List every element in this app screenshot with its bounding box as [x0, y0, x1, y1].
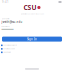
button[interactable]: Create account [1, 47, 64, 51]
staticText: Forgot password? [3, 44, 17, 46]
staticText: Sign In [27, 37, 37, 41]
button[interactable]: Forgot password? [1, 44, 64, 47]
staticText: CSU [23, 3, 36, 12]
staticText: 9:41 [2, 0, 9, 4]
staticText: Sign in with your university account [20, 13, 43, 15]
staticText: Need help? [3, 51, 11, 53]
staticText: •••••••••••• [1, 28, 13, 32]
staticText: Create account [3, 48, 14, 50]
staticText: Password [1, 26, 9, 27]
button[interactable]: Need help? [1, 51, 64, 54]
staticText: Username [1, 18, 9, 20]
staticText: jsmith@csu.edu [1, 20, 22, 24]
button[interactable]: Sign In [2, 37, 62, 42]
